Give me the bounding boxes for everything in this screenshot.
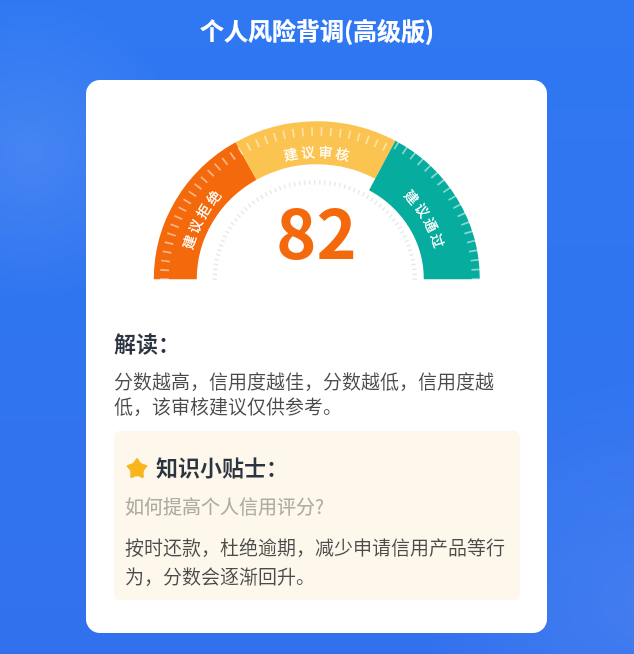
staticText: 如何提高个人信用评分? — [125, 492, 325, 520]
button[interactable]: 解读： — [86, 80, 547, 633]
staticText: 分数越高，信用度越佳，分数越低，信用度越低，该审核建议仅供参考。 — [114, 367, 500, 419]
staticText: 个人风险背调(高级版) — [0, 12, 634, 47]
staticText: 按时还款，杜绝逾期，减少申请信用产品等行为，分数会逐渐回升。 — [125, 533, 512, 590]
staticText: 解读： — [114, 326, 181, 358]
staticText: 知识小贴士： — [156, 450, 289, 482]
